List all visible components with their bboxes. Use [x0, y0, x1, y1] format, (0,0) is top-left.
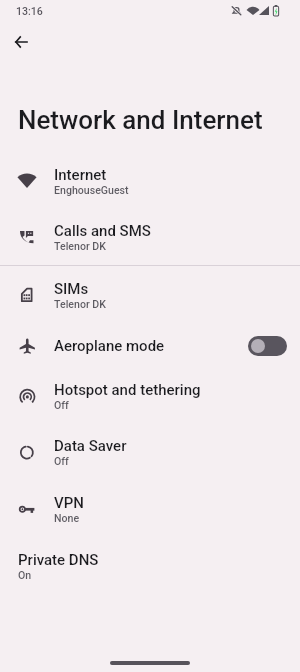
staticText: Telenor DK	[54, 240, 106, 252]
staticText: Data Saver	[54, 437, 127, 455]
staticText: EnghouseGuest	[54, 184, 129, 196]
staticText: Network and Internet	[18, 105, 263, 135]
button[interactable]: Calls and SMS	[0, 208, 300, 265]
button[interactable]: Hotspot and tethering	[0, 368, 300, 424]
button[interactable]: SIMs	[0, 266, 300, 323]
button[interactable]: Internet	[0, 152, 300, 209]
button[interactable]: Private DNS	[0, 537, 300, 594]
staticText: VPN	[54, 494, 84, 512]
staticText: Hotspot and tethering	[54, 381, 201, 399]
staticText: None	[54, 512, 80, 524]
staticText: Aeroplane mode	[54, 337, 165, 355]
staticText: SIMs	[54, 280, 89, 298]
button[interactable]: Aeroplane mode	[0, 323, 300, 368]
staticText: Off	[54, 455, 69, 467]
staticText: On	[18, 569, 32, 581]
staticText: 13:16	[16, 5, 43, 17]
button[interactable]: Back	[1, 22, 41, 62]
staticText: Private DNS	[18, 551, 99, 569]
button[interactable]: Aeroplane mode switch	[248, 336, 287, 356]
button[interactable]: Data Saver	[0, 423, 300, 480]
staticText: Internet	[54, 166, 107, 184]
staticText: Off	[54, 399, 69, 411]
button[interactable]: VPN	[0, 480, 300, 537]
staticText: Telenor DK	[54, 298, 106, 310]
staticText: Calls and SMS	[54, 222, 151, 240]
